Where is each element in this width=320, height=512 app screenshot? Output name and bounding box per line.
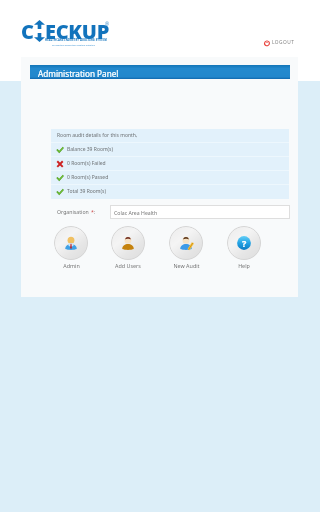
staticText: Admin (63, 262, 80, 269)
staticText: : (94, 208, 96, 215)
staticText: HEALTHCARE INDUSTRY AUDITING SYSTEM (45, 38, 107, 42)
staticText: Colac Area Health (114, 209, 158, 216)
button[interactable]: LOGOUT (262, 38, 297, 47)
button[interactable]: New Audit (169, 226, 203, 269)
staticText: an infection prevention auditing initiat… (52, 43, 95, 46)
button[interactable]: Admin (54, 226, 88, 269)
button[interactable]: ? (227, 226, 261, 269)
staticText: Organisation (57, 208, 91, 215)
staticText: ECKUP (45, 18, 109, 45)
staticText: Total 39 Room(s) (67, 188, 106, 195)
staticText: Balance 39 Room(s) (67, 146, 114, 153)
staticText: 0 Room(s) Passed (67, 174, 109, 181)
staticText: ? (242, 237, 247, 249)
staticText: Add Users (115, 262, 141, 269)
staticText: ® (105, 21, 110, 28)
button[interactable]: Colac Area Health (110, 205, 290, 219)
staticText: * (91, 208, 94, 215)
staticText: Administration Panel (38, 68, 119, 79)
staticText: LOGOUT (272, 39, 295, 46)
staticText: C (21, 18, 34, 45)
staticText: 0 Room(s) Failed (67, 160, 106, 167)
staticText: New Audit (173, 262, 200, 269)
staticText: Help (238, 262, 250, 269)
button[interactable]: Administration Panel (30, 65, 290, 79)
staticText: Room audit details for this month, (57, 132, 138, 139)
button[interactable]: Add Users (111, 226, 145, 269)
